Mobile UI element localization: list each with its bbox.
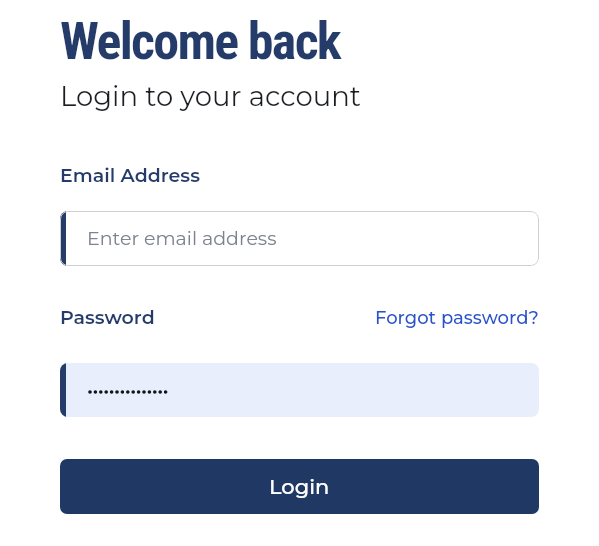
button[interactable] [60,363,539,417]
button[interactable]: Enter email address [60,211,539,266]
staticText: Password [60,306,155,329]
staticText: Enter email address [87,227,277,250]
staticText: Welcome back [60,11,341,72]
staticText: Email Address [60,164,200,187]
button[interactable]: Forgot password? [375,307,539,329]
staticText: Login [269,474,330,500]
staticText: Login to your account [60,79,361,113]
button[interactable]: Login [60,459,539,514]
